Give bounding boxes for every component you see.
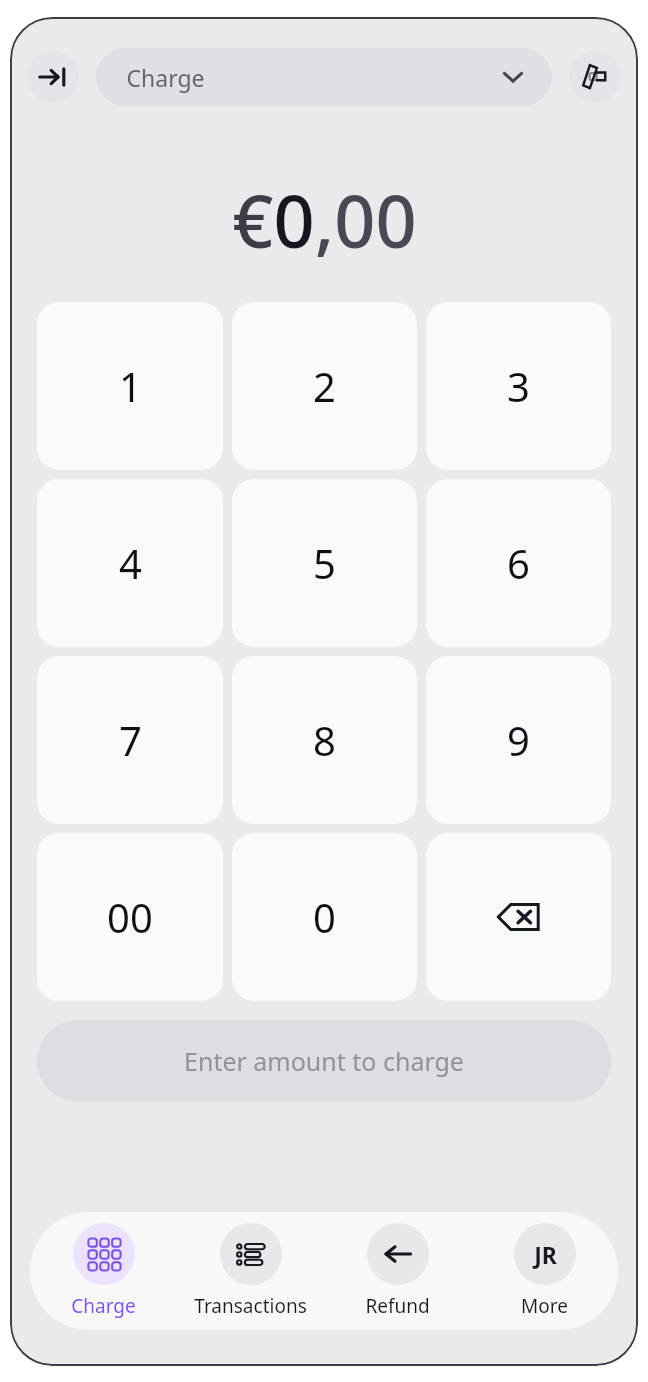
staticText: 3 (507, 359, 530, 413)
staticText: 00 (107, 890, 153, 944)
staticText: JR (534, 1239, 557, 1270)
button[interactable]: 9 (426, 656, 611, 824)
staticText: Charge (71, 1293, 136, 1319)
button[interactable]: 5 (232, 479, 417, 647)
button[interactable]: 00 (37, 833, 223, 1001)
button[interactable]: Charge (96, 48, 552, 106)
staticText: 7 (119, 713, 142, 767)
button[interactable]: Log out (27, 51, 79, 103)
staticText: Charge (126, 62, 205, 93)
button[interactable]: JR (471, 1212, 618, 1330)
staticText: Enter amount to charge (184, 1044, 464, 1078)
staticText: €0,00 (232, 171, 417, 269)
staticText: 9 (507, 713, 530, 767)
staticText: 5 (313, 536, 336, 590)
button[interactable]: 4 (37, 479, 223, 647)
button[interactable]: 2 (232, 302, 417, 470)
staticText: 4 (119, 536, 142, 590)
staticText: More (521, 1293, 568, 1319)
button[interactable]: 1 (37, 302, 223, 470)
button[interactable]: 6 (426, 479, 611, 647)
staticText: 6 (507, 536, 530, 590)
staticText: 8 (313, 713, 336, 767)
staticText: 1 (119, 359, 142, 413)
staticText: Refund (365, 1293, 430, 1319)
staticText: Transactions (194, 1293, 307, 1319)
button[interactable]: 8 (232, 656, 417, 824)
button[interactable]: Transactions (177, 1212, 324, 1330)
button[interactable]: Refund (324, 1212, 471, 1330)
button[interactable]: 3 (426, 302, 611, 470)
staticText: 0 (313, 890, 336, 944)
staticText: 2 (313, 359, 336, 413)
button[interactable]: Charge (30, 1212, 177, 1330)
button[interactable]: Tap to pay (569, 51, 621, 103)
button[interactable]: Backspace (426, 833, 611, 1001)
button[interactable]: Enter amount to charge (37, 1020, 611, 1102)
button[interactable]: 7 (37, 656, 223, 824)
button[interactable]: 0 (232, 833, 417, 1001)
